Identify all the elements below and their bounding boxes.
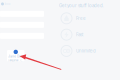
button[interactable]: Home [0, 0, 13, 8]
staticText: Fast [76, 32, 83, 37]
staticText: Jane Doe [8, 55, 23, 58]
staticText: Free [76, 16, 86, 21]
staticText: box [5, 2, 11, 6]
staticText: Get your stuff loaded. [59, 3, 104, 8]
staticText: Unlimited [76, 48, 96, 54]
button[interactable]: Account [7, 50, 24, 61]
staticText: jane@mail.com [8, 59, 23, 62]
